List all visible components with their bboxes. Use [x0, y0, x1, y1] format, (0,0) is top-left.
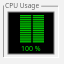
button[interactable]: CPU Usage meter, 100 percent — [0, 0, 64, 64]
